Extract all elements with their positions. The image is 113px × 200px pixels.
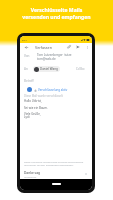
button[interactable]: Send <box>75 44 81 50</box>
button[interactable]: Back <box>23 44 29 50</box>
staticText: Antworten <box>24 175 37 178</box>
staticText: Cc/Bcc <box>76 67 85 71</box>
staticText: Danke sag <box>24 171 40 175</box>
staticText: Verschlüsselung aktiv <box>38 88 68 92</box>
staticText: Betreff <box>24 79 34 83</box>
button[interactable]: Danke sag <box>24 169 88 179</box>
staticText: An <box>24 67 28 71</box>
staticText: 9:41 <box>22 38 27 41</box>
staticText: Sei wie ein Baum. <box>24 106 48 110</box>
button[interactable]: Attach file <box>66 44 72 50</box>
button[interactable]: Daniel Wang <box>34 66 58 72</box>
button[interactable]: Dismiss <box>83 171 88 176</box>
button[interactable]: More options <box>84 44 90 50</box>
staticText: Verschlüsselte Mails <box>3 7 110 14</box>
staticText: Diese Nachricht wurde Ende-zu-Ende versc… <box>24 160 84 167</box>
staticText: Tom Lutzenberger tutze tom@web.de <box>37 53 72 61</box>
staticText: Viele Grüße, Lydi <box>24 112 41 119</box>
button[interactable]: Verfassen <box>35 45 52 50</box>
staticText: Diese Mail wurde verschlüsselt <box>24 94 63 98</box>
staticText: Hallo Utkrist, <box>24 99 42 103</box>
staticText: Daniel Wang <box>40 67 58 71</box>
staticText: Verfassen <box>35 45 52 50</box>
staticText: Von <box>24 54 30 58</box>
staticText: versenden und empfangen <box>3 14 110 21</box>
button[interactable]: Verschlüsselung aktiv <box>34 88 68 92</box>
